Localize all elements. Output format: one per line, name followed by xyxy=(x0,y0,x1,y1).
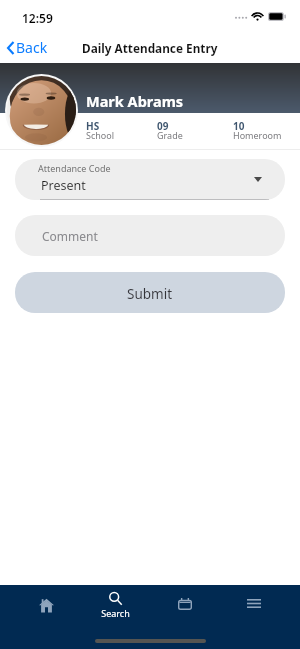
staticText: Submit xyxy=(127,285,173,303)
staticText: 09 xyxy=(157,119,169,133)
staticText: Homeroom xyxy=(233,129,282,141)
staticText: Attendance Code xyxy=(38,162,111,174)
button[interactable]: Search xyxy=(85,592,145,634)
button[interactable]: Menu xyxy=(224,592,284,634)
staticText: Grade xyxy=(157,129,183,141)
button[interactable]: Attendance Code xyxy=(15,159,285,200)
staticText: Back xyxy=(16,38,48,57)
button[interactable]: Calendar xyxy=(155,592,215,634)
button[interactable]: Back xyxy=(0,32,58,63)
staticText: 12:59 xyxy=(22,10,53,26)
staticText: Mark Abrams xyxy=(86,91,184,111)
staticText: Present xyxy=(41,177,86,194)
staticText: 10 xyxy=(233,119,245,133)
staticText: Search xyxy=(101,607,130,619)
button[interactable]: Home xyxy=(16,592,76,634)
staticText: School xyxy=(86,129,115,141)
staticText: Daily Attendance Entry xyxy=(82,40,218,56)
button[interactable]: Comment xyxy=(15,215,285,256)
staticText: HS xyxy=(86,119,100,133)
button[interactable]: Submit xyxy=(15,272,285,313)
staticText: Comment xyxy=(42,228,98,244)
